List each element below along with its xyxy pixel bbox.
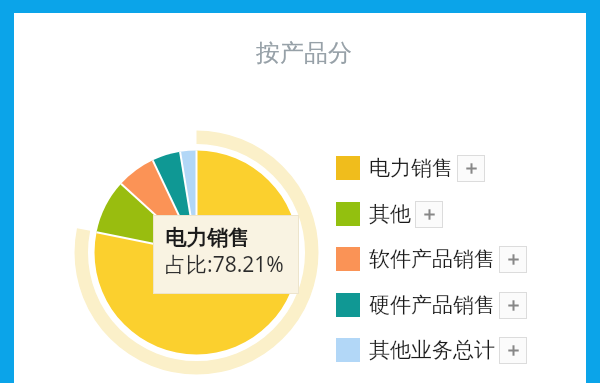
button[interactable]: 电力销售 (336, 154, 485, 181)
button[interactable]: 其他 (336, 200, 443, 227)
button[interactable]: 其他业务总计 (336, 336, 527, 363)
button[interactable]: 硬件产品销售 (336, 291, 527, 318)
button[interactable]: 软件产品销售 (336, 245, 527, 272)
staticText: 按产品分 (256, 38, 352, 68)
staticText: 电力销售 (369, 155, 453, 181)
button[interactable]: Expand 电力销售 (457, 155, 485, 182)
button[interactable]: Expand 其他业务总计 (499, 337, 527, 364)
staticText: 其他 (369, 201, 411, 227)
button[interactable]: Expand 其他 (415, 201, 443, 228)
staticText: 软件产品销售 (369, 246, 495, 272)
staticText: 其他业务总计 (369, 337, 495, 363)
staticText: 硬件产品销售 (369, 292, 495, 318)
staticText: 电力销售 (165, 225, 249, 251)
button[interactable]: Expand 软件产品销售 (499, 246, 527, 273)
button[interactable]: Expand 硬件产品销售 (499, 292, 527, 319)
staticText: 占比:78.21% (165, 250, 284, 279)
